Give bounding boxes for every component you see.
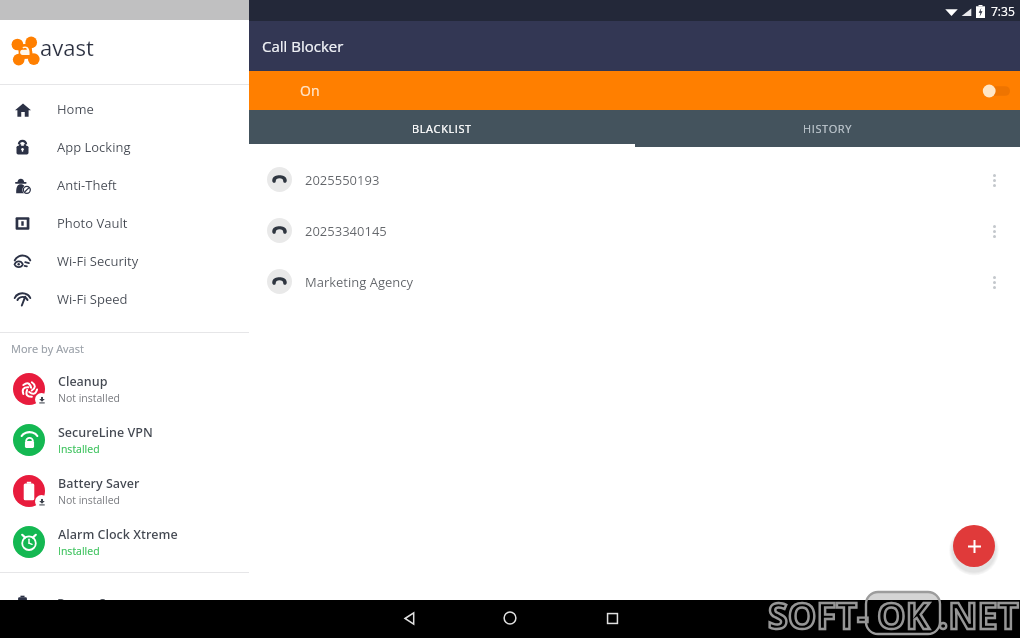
button[interactable]: HISTORY	[634, 110, 1020, 147]
button[interactable]: Wi-Fi Security	[0, 242, 249, 280]
button[interactable]: App Locking	[0, 128, 249, 166]
button[interactable]: 20253340145	[249, 205, 1020, 256]
staticText: avast	[40, 32, 94, 62]
button[interactable]: More options	[982, 270, 1006, 294]
button[interactable]: Marketing Agency	[249, 256, 1020, 307]
staticText: Anti-Theft	[57, 176, 117, 194]
button[interactable]: Cleanup	[0, 363, 249, 414]
staticText: Not installed	[58, 391, 120, 405]
staticText: Cleanup	[58, 373, 108, 390]
staticText: On	[300, 81, 320, 100]
staticText: .NET	[938, 591, 1019, 638]
staticText: 20253340145	[305, 222, 387, 240]
button[interactable]: More options	[982, 219, 1006, 243]
staticText: Call Blocker	[262, 36, 344, 56]
staticText: Wi-Fi Security	[57, 252, 139, 270]
button[interactable]: Power Save	[0, 584, 249, 622]
button[interactable]: Home	[497, 605, 523, 631]
button[interactable]: BLACKLIST	[249, 110, 634, 147]
staticText: More by Avast	[11, 341, 84, 356]
staticText: HISTORY	[803, 121, 852, 136]
button[interactable]: Anti-Theft	[0, 166, 249, 204]
staticText: 2025550193	[305, 171, 380, 189]
staticText: App Locking	[57, 138, 131, 156]
button[interactable]: 2025550193	[249, 154, 1020, 205]
staticText: OK	[877, 591, 930, 638]
staticText: Wi-Fi Speed	[57, 290, 128, 308]
staticText: BLACKLIST	[412, 121, 472, 136]
button[interactable]: SecureLine VPN	[0, 414, 249, 465]
staticText: 7:35	[991, 3, 1015, 19]
button[interactable]: Back	[396, 605, 422, 631]
button[interactable]: Add number	[953, 525, 995, 567]
button[interactable]: Battery Saver	[0, 465, 249, 516]
button[interactable]: On	[249, 71, 1020, 110]
button[interactable]: Alarm Clock Xtreme	[0, 516, 249, 567]
staticText: Battery Saver	[58, 475, 140, 492]
staticText: Installed	[58, 544, 100, 558]
button[interactable]: Home	[0, 90, 249, 128]
staticText: Home	[57, 100, 94, 118]
staticText: SecureLine VPN	[58, 424, 153, 441]
button[interactable]: Photo Vault	[0, 204, 249, 242]
button[interactable]: Toggle call blocker	[982, 83, 1010, 99]
staticText: Marketing Agency	[305, 273, 413, 291]
staticText: Photo Vault	[57, 214, 128, 232]
button[interactable]: Wi-Fi Speed	[0, 280, 249, 318]
button[interactable]: Recents	[599, 605, 625, 631]
button[interactable]: More options	[982, 168, 1006, 192]
staticText: SOFT-	[768, 591, 869, 638]
staticText: Not installed	[58, 493, 120, 507]
staticText: Power Save	[57, 594, 127, 612]
staticText: Installed	[58, 442, 100, 456]
staticText: Alarm Clock Xtreme	[58, 526, 178, 543]
